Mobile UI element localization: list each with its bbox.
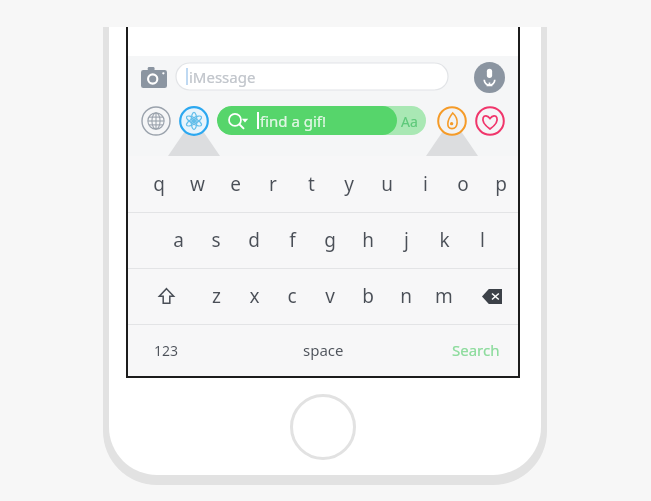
staticText: z [212, 283, 221, 309]
staticText: y [344, 171, 354, 197]
button[interactable]: i [406, 156, 444, 212]
button[interactable]: Camera [138, 62, 170, 92]
button[interactable]: Delete [468, 268, 516, 324]
staticText: d [248, 227, 260, 253]
staticText: b [362, 283, 374, 309]
staticText: r [269, 171, 277, 197]
button[interactable]: Favorites [474, 105, 506, 137]
button[interactable]: u [368, 156, 406, 212]
button[interactable]: j [387, 212, 425, 268]
staticText: x [249, 283, 260, 309]
button[interactable]: w [178, 156, 216, 212]
staticText: f [289, 227, 296, 253]
button[interactable]: GIF app [178, 105, 210, 137]
button[interactable]: space [258, 324, 388, 376]
staticText: Search [452, 340, 500, 360]
button[interactable]: d [235, 212, 273, 268]
staticText: i [423, 171, 428, 197]
staticText: m [435, 283, 453, 309]
staticText: h [362, 227, 374, 253]
button[interactable]: p [482, 156, 520, 212]
staticText: k [439, 227, 450, 253]
button[interactable]: x [235, 268, 273, 324]
staticText: o [457, 171, 469, 197]
button[interactable]: o [444, 156, 482, 212]
button[interactable]: f [273, 212, 311, 268]
button[interactable]: find a gif! [217, 106, 426, 135]
staticText: Aa [401, 112, 418, 131]
staticText: a [173, 227, 184, 253]
staticText: w [190, 171, 205, 197]
button[interactable]: Home [290, 394, 356, 460]
staticText: find a gif! [260, 111, 327, 131]
button[interactable]: n [387, 268, 425, 324]
button[interactable]: a [159, 212, 197, 268]
button[interactable]: iMessage [176, 63, 448, 90]
button[interactable]: App store [140, 105, 172, 137]
staticText: g [324, 227, 336, 253]
button[interactable]: 123 [136, 324, 196, 376]
button[interactable]: s [197, 212, 235, 268]
button[interactable]: Voice message [472, 60, 506, 94]
staticText: t [308, 171, 315, 197]
button[interactable]: t [292, 156, 330, 212]
button[interactable]: q [140, 156, 178, 212]
button[interactable]: Digital touch [436, 105, 468, 137]
button[interactable]: k [425, 212, 463, 268]
button[interactable]: Shift [142, 268, 190, 324]
staticText: p [495, 171, 507, 197]
button[interactable]: r [254, 156, 292, 212]
staticText: n [400, 283, 412, 309]
button[interactable]: Search [438, 324, 514, 376]
staticText: l [480, 227, 485, 253]
staticText: e [230, 171, 241, 197]
button[interactable]: m [425, 268, 463, 324]
staticText: u [381, 171, 393, 197]
staticText: c [287, 283, 297, 309]
button[interactable]: y [330, 156, 368, 212]
button[interactable]: c [273, 268, 311, 324]
button[interactable]: h [349, 212, 387, 268]
button[interactable]: z [197, 268, 235, 324]
button[interactable]: b [349, 268, 387, 324]
button[interactable]: e [216, 156, 254, 212]
staticText: j [404, 227, 409, 253]
staticText: 123 [154, 341, 179, 360]
staticText: v [325, 283, 335, 309]
staticText: s [211, 227, 221, 253]
staticText: q [153, 171, 165, 197]
staticText: space [303, 340, 344, 360]
staticText: iMessage [189, 67, 256, 87]
button[interactable]: g [311, 212, 349, 268]
button[interactable]: l [463, 212, 501, 268]
button[interactable]: v [311, 268, 349, 324]
